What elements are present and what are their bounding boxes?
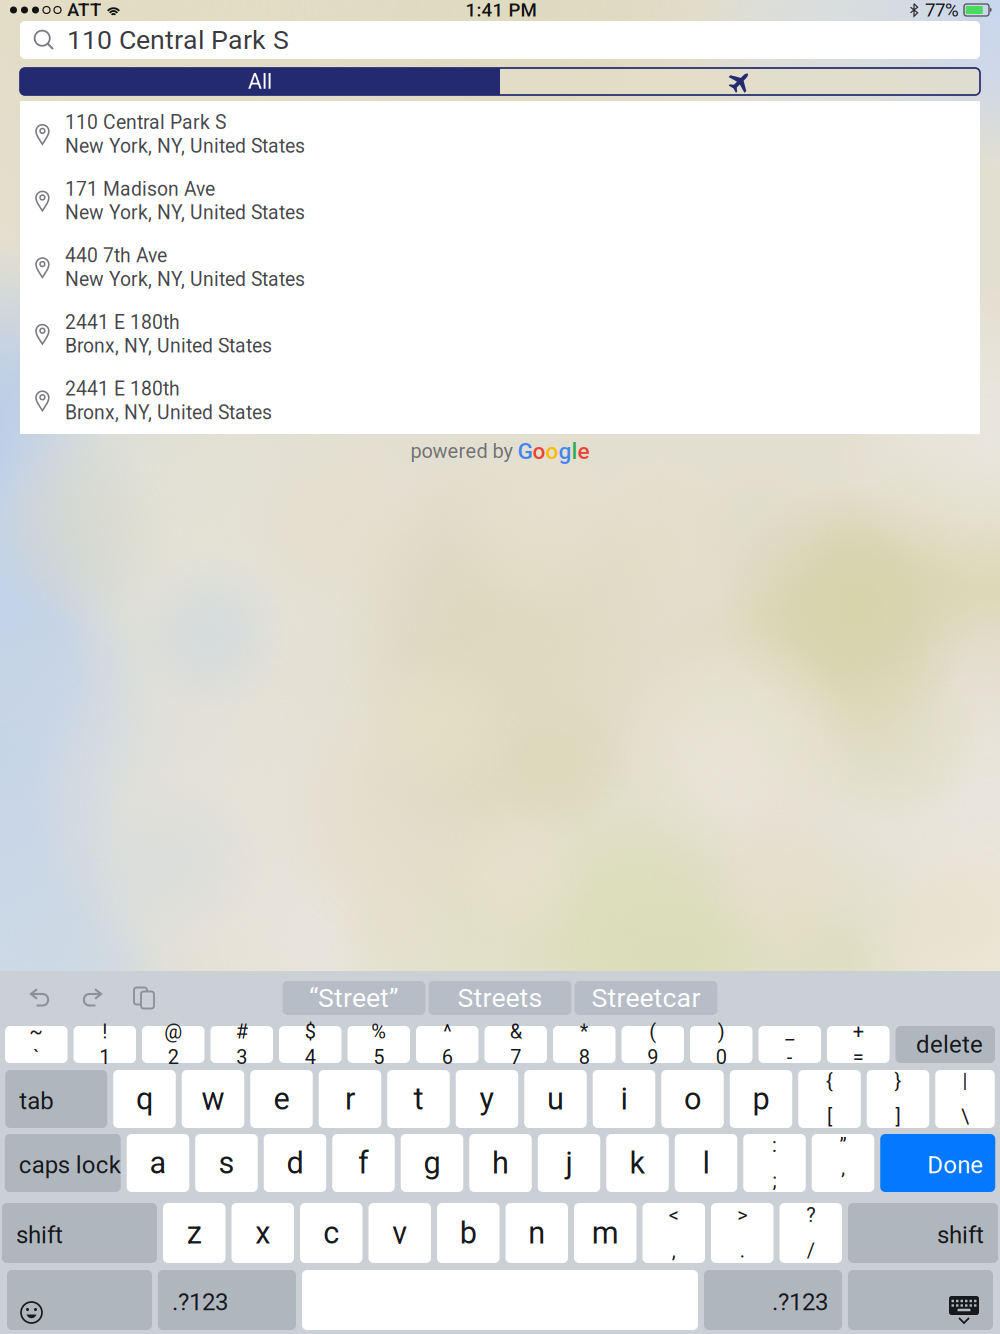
button[interactable]: Redo — [66, 981, 118, 1015]
button[interactable]: > — [711, 1203, 773, 1263]
staticText: k — [629, 1145, 645, 1181]
button[interactable]: c — [300, 1203, 362, 1263]
button[interactable]: k — [606, 1134, 669, 1192]
button[interactable]: : — [743, 1134, 806, 1192]
staticText: g — [423, 1145, 440, 1181]
button[interactable]: .?123 — [158, 1270, 296, 1330]
button[interactable]: d — [264, 1134, 326, 1192]
button[interactable]: z — [163, 1203, 225, 1263]
button[interactable]: } — [867, 1070, 929, 1128]
button[interactable]: y — [456, 1070, 518, 1128]
button[interactable]: * — [553, 1026, 615, 1063]
staticText: ! — [102, 1020, 107, 1043]
button[interactable]: ” — [812, 1134, 874, 1192]
staticText: New York, NY, United States — [65, 135, 305, 157]
button[interactable]: u — [524, 1070, 587, 1128]
button[interactable]: s — [195, 1134, 258, 1192]
button[interactable]: 110 Central Park S — [20, 21, 980, 59]
button[interactable]: _ — [758, 1026, 821, 1063]
staticText: . — [740, 1239, 745, 1262]
button[interactable]: ^ — [416, 1026, 478, 1063]
staticText: o — [684, 1081, 701, 1117]
button[interactable]: Emoji — [7, 1270, 152, 1330]
button[interactable]: ( — [621, 1026, 684, 1063]
button[interactable]: Undo — [14, 981, 66, 1015]
button[interactable]: 2441 E 180th — [20, 301, 980, 367]
button[interactable]: t — [387, 1070, 450, 1128]
button[interactable]: Streetcar — [574, 981, 717, 1015]
button[interactable]: Done — [880, 1134, 995, 1192]
button[interactable]: @ — [142, 1026, 204, 1063]
staticText: s — [218, 1145, 234, 1181]
staticText: 110 Central Park S — [67, 24, 289, 56]
button[interactable]: % — [347, 1026, 410, 1063]
button[interactable]: Hide keyboard — [848, 1270, 993, 1330]
staticText: 6 — [442, 1045, 453, 1069]
button[interactable]: a — [127, 1134, 189, 1192]
staticText: .?123 — [772, 1288, 828, 1316]
button[interactable]: e — [250, 1070, 313, 1128]
staticText: 171 Madison Ave — [65, 178, 215, 200]
button[interactable]: # — [210, 1026, 273, 1063]
button[interactable]: 171 Madison Ave — [20, 168, 980, 234]
button[interactable]: 2441 E 180th — [20, 367, 980, 434]
button[interactable]: caps lock — [5, 1134, 121, 1192]
button[interactable]: w — [182, 1070, 244, 1128]
staticText: # — [236, 1020, 248, 1043]
button[interactable]: g — [401, 1134, 463, 1192]
button[interactable]: Paste — [118, 981, 170, 1015]
button[interactable]: n — [505, 1203, 568, 1263]
staticText: 0 — [716, 1045, 727, 1069]
button[interactable]: i — [593, 1070, 655, 1128]
button[interactable]: m — [574, 1203, 636, 1263]
staticText: l — [702, 1145, 709, 1181]
button[interactable]: 110 Central Park S — [20, 101, 980, 168]
button[interactable]: ~ — [5, 1026, 67, 1063]
staticText: ? — [806, 1204, 815, 1227]
staticText: n — [528, 1215, 545, 1251]
button[interactable]: shift — [848, 1203, 998, 1263]
staticText: 110 Central Park S — [65, 111, 226, 134]
staticText: 3 — [236, 1045, 247, 1069]
button[interactable]: $ — [279, 1026, 341, 1063]
staticText: b — [460, 1215, 477, 1251]
button[interactable]: < — [642, 1203, 705, 1263]
button[interactable]: v — [368, 1203, 431, 1263]
button[interactable]: { — [798, 1070, 861, 1128]
button[interactable]: j — [538, 1134, 600, 1192]
button[interactable]: ? — [779, 1203, 842, 1263]
staticText: q — [136, 1081, 153, 1117]
button[interactable]: ! — [73, 1026, 136, 1063]
button[interactable]: & — [484, 1026, 547, 1063]
button[interactable]: Flights — [500, 68, 980, 95]
button[interactable]: b — [437, 1203, 499, 1263]
button[interactable]: o — [661, 1070, 724, 1128]
button[interactable]: “Street” — [282, 981, 425, 1015]
button[interactable]: 440 7th Ave — [20, 234, 980, 301]
staticText: Streetcar — [591, 982, 700, 1014]
staticText: l — [571, 438, 577, 465]
button[interactable]: r — [319, 1070, 381, 1128]
staticText: : — [772, 1134, 777, 1157]
button[interactable]: l — [675, 1134, 737, 1192]
button[interactable]: Streets — [428, 981, 571, 1015]
button[interactable]: | — [935, 1070, 995, 1128]
button[interactable]: x — [231, 1203, 294, 1263]
button[interactable]: shift — [2, 1203, 157, 1263]
button[interactable]: h — [469, 1134, 532, 1192]
staticText: { — [826, 1070, 833, 1093]
button[interactable]: delete — [895, 1026, 995, 1063]
button[interactable]: q — [113, 1070, 176, 1128]
button[interactable]: p — [730, 1070, 792, 1128]
staticText: 4 — [305, 1045, 316, 1069]
staticText: u — [547, 1081, 564, 1117]
staticText: > — [737, 1204, 747, 1227]
staticText: % — [371, 1020, 386, 1043]
button[interactable]: All — [20, 68, 500, 95]
button[interactable]: ) — [690, 1026, 752, 1063]
button[interactable]: .?123 — [704, 1270, 842, 1330]
button[interactable]: f — [332, 1134, 395, 1192]
button[interactable]: tab — [5, 1070, 107, 1128]
button[interactable]: + — [827, 1026, 889, 1063]
